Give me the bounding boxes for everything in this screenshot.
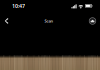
button[interactable]: Back [1, 14, 12, 28]
button[interactable]: Switch camera [86, 14, 99, 28]
staticText: 10:47 [12, 2, 25, 10]
staticText: Scan [44, 18, 53, 24]
